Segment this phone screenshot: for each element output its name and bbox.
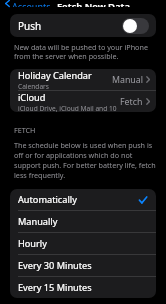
staticText: Fetch New Data [57, 0, 131, 7]
button[interactable]: Accounts [0, 0, 51, 7]
button[interactable]: Every 15 Minutes [10, 277, 156, 298]
staticText: Push [18, 19, 42, 33]
button[interactable]: Every 30 Minutes [10, 255, 156, 276]
button[interactable]: Manually [10, 211, 156, 232]
staticText: Manually [18, 215, 58, 228]
staticText: Fetch [120, 96, 143, 108]
staticText: Accounts [12, 0, 51, 7]
button[interactable]: iCloud [10, 91, 156, 112]
button[interactable]: Hourly [10, 233, 156, 254]
staticText: New data will be pushed to your iPhone f… [14, 42, 156, 62]
button[interactable]: Automatically [10, 189, 156, 210]
button[interactable]: Push [10, 14, 156, 37]
staticText: Calendars [18, 82, 49, 90]
staticText: Manual [112, 74, 143, 86]
staticText: Holiday Calendar [18, 69, 92, 82]
staticText: The schedule below is used when push is … [14, 140, 156, 180]
button[interactable]: Holiday Calendar [10, 69, 156, 90]
staticText: Automatically [18, 193, 77, 206]
staticText: Every 15 Minutes [18, 281, 92, 294]
button[interactable]: Push toggle [122, 18, 149, 34]
staticText: iCloud Drive, iCloud Mail and 10 more... [18, 104, 120, 112]
staticText: FETCH [14, 125, 36, 135]
staticText: Every 30 Minutes [18, 259, 92, 272]
staticText: Hourly [18, 237, 47, 250]
staticText: iCloud [18, 91, 46, 104]
